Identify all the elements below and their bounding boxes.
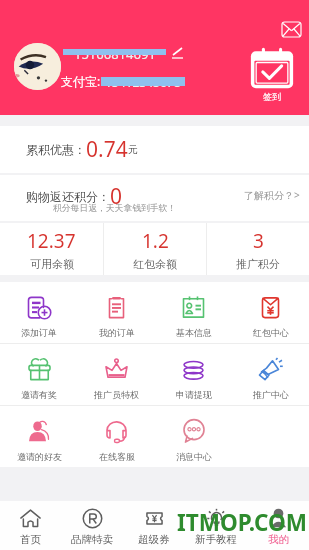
staticText: 添加订单	[21, 327, 57, 338]
button[interactable]: 我的订单	[78, 282, 155, 343]
button[interactable]: 品牌特卖	[61, 501, 123, 550]
button[interactable]: 我的	[247, 501, 309, 550]
staticText: 申请提现	[176, 389, 212, 400]
staticText: 了解积分？>	[244, 188, 300, 202]
staticText: 推广积分	[236, 257, 280, 271]
button[interactable]: Sign in	[250, 47, 294, 102]
staticText: 积分每日返，天天拿钱到手软！	[53, 203, 177, 214]
staticText: 我的订单	[99, 327, 135, 338]
staticText: 新手教程	[195, 533, 237, 546]
staticText: 推广员特权	[94, 389, 139, 400]
button[interactable]: 了解积分？>	[244, 188, 300, 202]
staticText: 15166814691	[74, 45, 156, 59]
staticText: 在线客服	[99, 451, 135, 462]
staticText: 0.74	[86, 135, 128, 164]
button[interactable]: Messages	[281, 20, 302, 38]
staticText: 支付宝:	[61, 73, 101, 89]
staticText: 3	[253, 228, 264, 254]
staticText: 基本信息	[176, 327, 212, 338]
staticText: 推广中心	[253, 389, 289, 400]
staticText: 超级券	[138, 533, 170, 546]
button[interactable]: 推广员特权	[78, 344, 155, 405]
staticText: 品牌特卖	[71, 533, 113, 546]
staticText: ITMOP.COM	[177, 507, 308, 538]
button[interactable]: 消息中心	[155, 406, 232, 467]
button[interactable]: 邀请的好友	[0, 406, 78, 467]
button[interactable]: 申请提现	[155, 344, 232, 405]
button[interactable]: 12.37	[0, 223, 103, 275]
button[interactable]: Edit nickname	[171, 46, 184, 59]
button[interactable]: 添加订单	[0, 282, 78, 343]
staticText: 15412345678	[105, 74, 181, 88]
button[interactable]: 基本信息	[155, 282, 232, 343]
staticText: 消息中心	[176, 451, 212, 462]
staticText: 红包余额	[133, 257, 177, 271]
staticText: 12.37	[27, 228, 76, 254]
staticText: 0	[110, 182, 123, 211]
button[interactable]: 超级券	[123, 501, 185, 550]
staticText: 邀请有奖	[21, 389, 57, 400]
button[interactable]: 1.2	[104, 223, 206, 275]
staticText: 签到	[263, 91, 281, 102]
staticText: 累积优惠：	[26, 142, 86, 157]
staticText: 1.2	[142, 228, 169, 254]
staticText: 元	[128, 143, 138, 156]
staticText: 我的	[268, 533, 289, 546]
button[interactable]: 推广中心	[232, 344, 309, 405]
staticText: 可用余额	[30, 257, 74, 271]
button[interactable]: 红包中心	[232, 282, 309, 343]
staticText: 邀请的好友	[17, 451, 62, 462]
button[interactable]: 在线客服	[78, 406, 155, 467]
staticText: 红包中心	[253, 327, 289, 338]
button[interactable]: 3	[207, 223, 309, 275]
staticText: 购物返还积分：	[26, 189, 110, 204]
staticText: 首页	[20, 533, 41, 546]
button[interactable]: 新手教程	[185, 501, 247, 550]
button[interactable]: Avatar	[14, 43, 61, 90]
button[interactable]: 邀请有奖	[0, 344, 78, 405]
button[interactable]: 首页	[0, 501, 61, 550]
